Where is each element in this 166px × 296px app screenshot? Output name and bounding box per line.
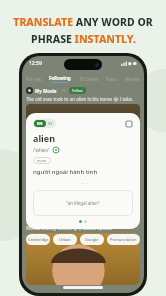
- staticText: người ngoài hành tinh: [33, 168, 98, 176]
- staticText: 12:59: [29, 60, 42, 67]
- staticText: EN: [37, 121, 43, 126]
- button[interactable]: News: [106, 76, 118, 82]
- staticText: Urban: [59, 237, 71, 242]
- staticText: alien: [33, 132, 55, 144]
- staticText: "an illegal alien": [66, 200, 100, 206]
- staticText: The old man took to an alien in his home…: [26, 96, 133, 102]
- staticText: PHRASE INSTANTLY.: [31, 32, 136, 46]
- button[interactable]: Follow: [72, 217, 83, 222]
- button[interactable]: Save word: [124, 119, 133, 128]
- button[interactable]: Following: [49, 75, 71, 83]
- button[interactable]: For you: [26, 76, 42, 82]
- staticText: Cambridge: [28, 237, 49, 242]
- staticText: TV Shows: [79, 76, 99, 82]
- staticText: Follow: [72, 217, 83, 222]
- button[interactable]: TV Shows: [79, 76, 99, 82]
- staticText: · ··· ·: [78, 181, 88, 186]
- staticText: noun: [37, 158, 47, 163]
- staticText: /ˈeɪliən/: [33, 147, 49, 153]
- staticText: · 1h: [59, 88, 66, 93]
- button[interactable]: Google: [80, 237, 104, 242]
- staticText: Pronunciation: [110, 237, 137, 242]
- staticText: VI: [48, 121, 52, 126]
- staticText: TRANSLATE ANY WORD OR: [13, 15, 153, 29]
- button[interactable]: Movies: [125, 76, 140, 82]
- button[interactable]: Follow: [72, 88, 83, 93]
- staticText: Follow: [72, 88, 83, 93]
- staticText: Following: [49, 75, 71, 81]
- button[interactable]: Mute: [130, 237, 136, 243]
- staticText: For you: [26, 76, 42, 82]
- button[interactable]: Urban: [53, 237, 77, 242]
- staticText: News: [106, 76, 118, 82]
- staticText: My Movie: [35, 88, 57, 94]
- button[interactable]: Play pronunciation: [52, 146, 59, 153]
- button[interactable]: EN: [34, 120, 55, 127]
- staticText: Mortal enemy, cheers 😊 | Status Update: [26, 225, 113, 231]
- button[interactable]: Pronunciation: [107, 237, 140, 242]
- staticText: Google: [85, 237, 99, 242]
- staticText: Movies: [125, 76, 140, 82]
- button[interactable]: Cambridge: [26, 237, 50, 242]
